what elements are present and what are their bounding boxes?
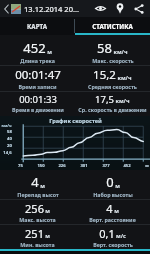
staticText: Средняя скорость — [88, 83, 137, 90]
staticText: 226 — [58, 163, 66, 169]
staticText: 20 — [7, 143, 12, 149]
button[interactable]: 251 — [0, 226, 75, 248]
button[interactable]: 58 — [75, 39, 150, 64]
staticText: 452 — [23, 39, 46, 57]
button[interactable]: 00:01:47 — [0, 67, 75, 90]
button[interactable]: 17,5 — [75, 93, 150, 113]
staticText: м — [45, 207, 50, 215]
staticText: 40 — [7, 136, 12, 142]
staticText: Перепад высот — [17, 191, 59, 198]
staticText: км/ч — [117, 74, 132, 82]
button[interactable]: СТАТИСТИКА — [75, 17, 150, 35]
staticText: Верт. расстояние — [89, 216, 136, 223]
staticText: Время записи — [18, 83, 57, 90]
staticText: 13.12.2014 20... — [24, 4, 79, 14]
staticText: Мин. высота — [20, 241, 55, 248]
staticText: 4 — [31, 173, 39, 191]
staticText: 4 — [106, 201, 113, 216]
staticText: 58 — [97, 39, 112, 57]
staticText: 150 — [37, 163, 45, 169]
staticText: км/ч — [113, 48, 128, 56]
staticText: Длина трека — [20, 57, 55, 64]
staticText: 14,6 — [3, 150, 12, 156]
button[interactable]: 0,1 — [75, 226, 150, 248]
staticText: км/ч — [115, 97, 130, 105]
staticText: 0 — [106, 173, 114, 191]
staticText: График скоростей — [49, 117, 102, 125]
button[interactable]: Show on map — [94, 2, 107, 15]
staticText: Ср. скорость в движении — [78, 106, 147, 113]
staticText: 452 — [123, 163, 131, 169]
staticText: 75 — [18, 163, 23, 169]
staticText: СТАТИСТИКА — [92, 22, 133, 30]
button[interactable]: График скоростей — [0, 116, 150, 170]
staticText: Макс. скорость — [92, 57, 134, 64]
staticText: 15,2 — [93, 67, 116, 83]
staticText: м — [145, 163, 149, 169]
staticText: м — [45, 232, 50, 240]
button[interactable]: 15,2 — [75, 67, 150, 90]
staticText: 00:01:47 — [15, 67, 61, 83]
staticText: Макс. высота — [19, 216, 56, 223]
staticText: 0,1 — [99, 226, 115, 241]
staticText: 377 — [102, 163, 110, 169]
staticText: Набор высоты — [93, 191, 133, 198]
staticText: м — [114, 207, 119, 215]
staticText: м — [115, 182, 120, 190]
staticText: м — [47, 48, 52, 56]
staticText: м — [40, 182, 45, 190]
staticText: км/ч — [1, 123, 12, 128]
staticText: 301 — [80, 163, 88, 169]
staticText: 00:01:33 — [19, 93, 57, 106]
button[interactable]: КАРТА — [0, 17, 74, 35]
button[interactable]: Back — [2, 2, 10, 16]
button[interactable]: 256 — [0, 201, 75, 223]
staticText: КАРТА — [27, 22, 47, 30]
staticText: Время в движении — [12, 106, 64, 113]
staticText: м/с — [116, 232, 126, 240]
staticText: 17,5 — [95, 93, 114, 106]
staticText: Верт. скорость — [93, 241, 133, 248]
staticText: 58 — [7, 129, 12, 135]
staticText: 251 — [25, 226, 44, 241]
button[interactable]: 4 — [0, 173, 75, 198]
button[interactable]: 0 — [75, 173, 150, 198]
button[interactable]: Share — [132, 2, 145, 15]
button[interactable]: 4 — [75, 201, 150, 223]
button[interactable]: Waypoints — [113, 2, 126, 15]
button[interactable]: 00:01:33 — [0, 93, 75, 113]
button[interactable]: 452 — [0, 39, 75, 64]
staticText: 256 — [25, 201, 44, 216]
